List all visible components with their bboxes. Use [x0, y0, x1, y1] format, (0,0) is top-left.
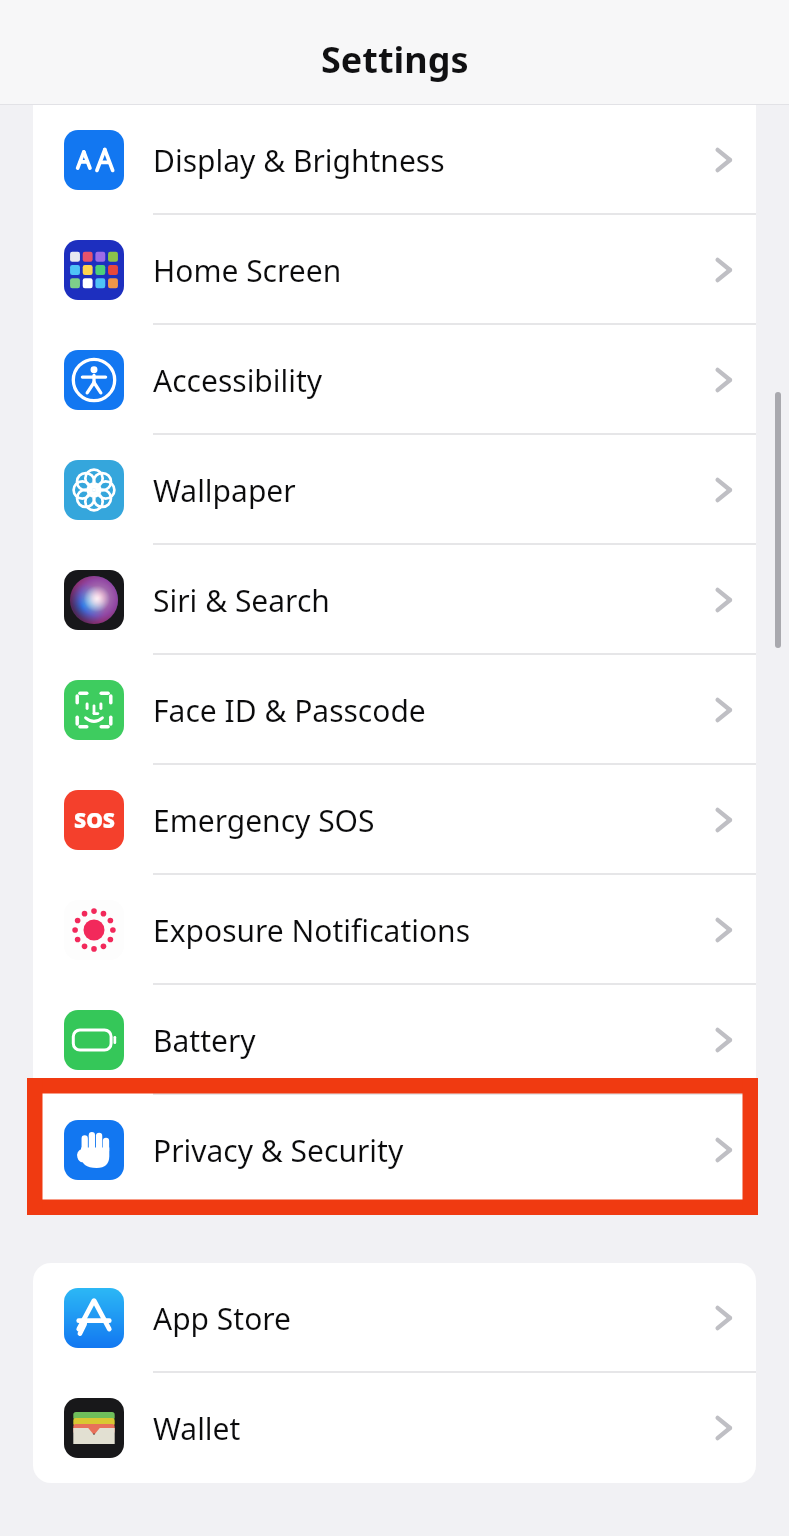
staticText: SOS [74, 806, 115, 835]
staticText: Display & Brightness [153, 140, 445, 181]
staticText: Siri & Search [153, 580, 330, 621]
button[interactable]: App Store [33, 1263, 756, 1373]
button[interactable]: Display & Brightness [33, 105, 756, 215]
staticText: Accessibility [153, 360, 323, 401]
staticText: Privacy & Security [153, 1130, 404, 1171]
button[interactable]: Wallet [33, 1373, 756, 1483]
staticText: Settings [321, 35, 469, 84]
other: Highlight Privacy and Security [27, 1078, 758, 1215]
button[interactable]: Privacy & Security [33, 1095, 756, 1205]
button[interactable]: Wallpaper [33, 435, 756, 545]
staticText: Battery [153, 1020, 256, 1061]
staticText: Exposure Notifications [153, 910, 471, 951]
button[interactable]: Battery [33, 985, 756, 1095]
button[interactable]: Home Screen [33, 215, 756, 325]
staticText: Home Screen [153, 250, 342, 291]
staticText: Emergency SOS [153, 800, 375, 841]
staticText: App Store [153, 1298, 292, 1339]
button[interactable]: Siri & Search [33, 545, 756, 655]
staticText: Wallpaper [153, 470, 296, 511]
button[interactable]: Face ID & Passcode [33, 655, 756, 765]
staticText: Face ID & Passcode [153, 690, 426, 731]
button[interactable]: Exposure Notifications [33, 875, 756, 985]
button[interactable]: SOS [33, 765, 756, 875]
button[interactable]: Accessibility [33, 325, 756, 435]
staticText: Wallet [153, 1408, 241, 1449]
